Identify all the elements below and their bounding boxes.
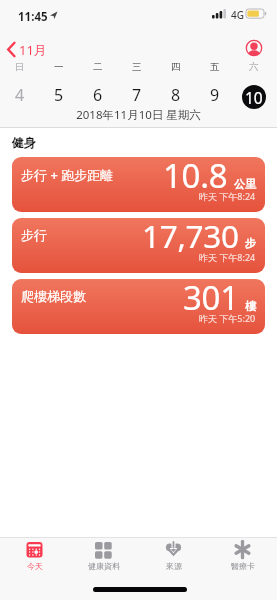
staticText: 10.8 — [163, 157, 228, 198]
staticText: 醫療卡 — [231, 561, 255, 571]
staticText: 4G — [231, 8, 244, 22]
staticText: 日 — [15, 61, 25, 73]
staticText: 步行 + 跑步距離 — [21, 166, 114, 184]
staticText: 昨天 下午8:24 — [199, 190, 256, 202]
staticText: 4 — [15, 84, 25, 106]
staticText: 樓 — [245, 299, 256, 313]
staticText: 11:45 — [18, 9, 48, 25]
staticText: 2018年11月10日 星期六 — [76, 107, 201, 123]
staticText: 9 — [210, 84, 220, 106]
staticText: 三 — [132, 61, 142, 73]
staticText: 今天 — [27, 561, 43, 571]
staticText: 四 — [171, 61, 181, 73]
staticText: 17,730 — [142, 218, 239, 257]
staticText: 二 — [93, 61, 103, 73]
staticText: 步行 — [21, 227, 47, 243]
staticText: 六 — [249, 61, 259, 73]
staticText: 11月 — [19, 41, 47, 59]
staticText: 五 — [210, 61, 220, 73]
staticText: 公里 — [234, 177, 256, 191]
staticText: 步 — [245, 236, 256, 250]
staticText: 昨天 下午8:24 — [199, 251, 256, 263]
staticText: 7 — [132, 84, 142, 106]
staticText: 301 — [183, 279, 239, 320]
staticText: 來源 — [166, 561, 182, 571]
staticText: 8 — [171, 84, 181, 106]
staticText: 健身 — [12, 135, 36, 150]
staticText: 6 — [93, 84, 103, 106]
staticText: 健康資料 — [88, 561, 120, 571]
staticText: 昨天 下午5:20 — [199, 312, 256, 324]
staticText: 5 — [54, 84, 64, 106]
staticText: 爬樓梯段數 — [21, 288, 86, 304]
staticText: 10 — [245, 87, 263, 108]
staticText: 一 — [54, 61, 64, 73]
